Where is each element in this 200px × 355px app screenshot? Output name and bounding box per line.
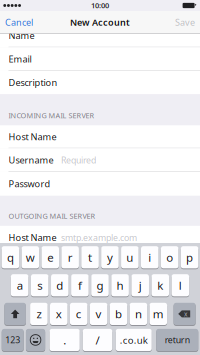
- staticText: .co.uk: [120, 333, 148, 346]
- staticText: w: [26, 249, 35, 265]
- staticText: Save: [175, 16, 195, 28]
- button[interactable]: Save: [150, 11, 200, 33]
- button[interactable]: Emoji: [26, 329, 45, 351]
- button[interactable]: i: [141, 246, 159, 268]
- staticText: /: [95, 332, 99, 348]
- button[interactable]: m: [149, 303, 167, 325]
- button[interactable]: n: [130, 303, 147, 325]
- button[interactable]: x: [50, 303, 68, 325]
- button[interactable]: d: [51, 274, 69, 296]
- button[interactable]: Cancel: [0, 11, 50, 33]
- staticText: p: [186, 249, 193, 265]
- button[interactable]: Host Name: [0, 125, 200, 148]
- button[interactable]: v: [90, 303, 107, 325]
- button[interactable]: Shift: [4, 303, 26, 325]
- staticText: Host Name: [8, 231, 56, 244]
- button[interactable]: Password: [0, 172, 200, 196]
- button[interactable]: r: [61, 246, 79, 268]
- staticText: 10:00: [91, 0, 109, 10]
- button[interactable]: l: [172, 274, 189, 296]
- staticText: .: [63, 332, 66, 348]
- button[interactable]: Name: [0, 24, 200, 47]
- staticText: OUTGOING MAIL SERVER: [8, 211, 95, 221]
- button[interactable]: 123: [2, 329, 24, 351]
- staticText: Cancel: [5, 16, 33, 28]
- button[interactable]: q: [2, 246, 19, 268]
- staticText: o: [166, 249, 173, 265]
- staticText: x: [184, 309, 188, 318]
- staticText: 123: [5, 334, 20, 346]
- button[interactable]: t: [81, 246, 99, 268]
- button[interactable]: p: [181, 246, 198, 268]
- staticText: e: [47, 249, 53, 265]
- button[interactable]: h: [111, 274, 129, 296]
- button[interactable]: return: [156, 329, 198, 351]
- staticText: Name: [8, 29, 34, 42]
- staticText: n: [135, 306, 142, 322]
- button[interactable]: o: [161, 246, 178, 268]
- staticText: f: [78, 277, 82, 293]
- button[interactable]: Delete: [174, 303, 196, 325]
- button[interactable]: /: [83, 329, 112, 351]
- staticText: d: [56, 277, 63, 293]
- staticText: m: [153, 306, 164, 322]
- button[interactable]: Email: [0, 47, 200, 71]
- staticText: y: [107, 249, 113, 265]
- staticText: Username: [8, 154, 53, 166]
- staticText: r: [68, 249, 73, 265]
- staticText: b: [115, 306, 122, 322]
- staticText: return: [165, 334, 190, 346]
- button[interactable]: c: [70, 303, 87, 325]
- button[interactable]: f: [71, 274, 89, 296]
- button[interactable]: Host Name: [0, 226, 200, 249]
- staticText: a: [17, 277, 23, 293]
- staticText: t: [88, 249, 92, 265]
- staticText: u: [126, 249, 133, 265]
- staticText: Description: [8, 76, 57, 89]
- button[interactable]: s: [31, 274, 48, 296]
- button[interactable]: a: [11, 274, 28, 296]
- button[interactable]: .: [49, 329, 80, 351]
- staticText: INCOMING MAIL SERVER: [8, 110, 94, 120]
- button[interactable]: j: [131, 274, 149, 296]
- button[interactable]: b: [110, 303, 127, 325]
- staticText: smtp.example.com: [61, 232, 137, 244]
- staticText: x: [56, 306, 62, 322]
- button[interactable]: y: [101, 246, 119, 268]
- button[interactable]: Description: [0, 71, 200, 94]
- staticText: Email: [8, 53, 31, 65]
- staticText: New Account: [70, 16, 130, 28]
- staticText: i: [148, 249, 151, 265]
- staticText: l: [179, 277, 182, 293]
- staticText: j: [139, 277, 142, 293]
- button[interactable]: .co.uk: [116, 329, 152, 351]
- staticText: z: [36, 306, 41, 322]
- button[interactable]: Username: [0, 148, 200, 172]
- button[interactable]: g: [91, 274, 109, 296]
- button[interactable]: w: [21, 246, 39, 268]
- staticText: Password: [8, 177, 50, 190]
- button[interactable]: u: [121, 246, 139, 268]
- staticText: c: [76, 306, 82, 322]
- staticText: Host Name: [8, 130, 56, 143]
- staticText: Required: [61, 154, 96, 166]
- staticText: h: [117, 277, 124, 293]
- staticText: k: [157, 277, 163, 293]
- button[interactable]: z: [30, 303, 48, 325]
- staticText: g: [96, 277, 103, 293]
- button[interactable]: e: [41, 246, 59, 268]
- button[interactable]: k: [151, 274, 169, 296]
- staticText: q: [7, 249, 14, 265]
- staticText: s: [37, 277, 42, 293]
- staticText: v: [96, 306, 102, 322]
